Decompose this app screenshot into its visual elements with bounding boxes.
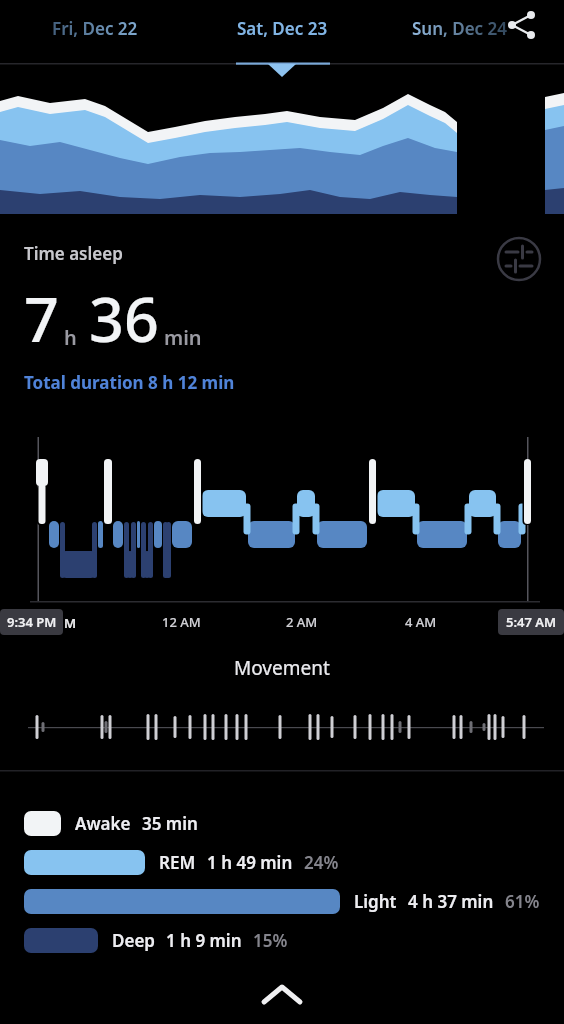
staticText: 4 h 37 min — [408, 890, 494, 913]
button[interactable]: Sat, Dec 23 — [206, 12, 358, 44]
staticText: Light — [354, 890, 397, 913]
button[interactable] — [256, 976, 308, 1016]
button[interactable]: Sun, Dec 24 — [412, 12, 509, 44]
button[interactable]: 9:34 PM — [0, 609, 63, 635]
staticText: 12 AM — [162, 613, 201, 631]
button[interactable]: Light — [24, 888, 540, 914]
staticText: Sun, Dec 24 — [412, 17, 507, 40]
staticText: Awake — [75, 812, 131, 835]
staticText: 7 — [24, 277, 59, 360]
staticText: 2 AM — [286, 613, 318, 631]
staticText: Sat, Dec 23 — [237, 17, 328, 40]
button[interactable]: 5:47 AM — [498, 609, 564, 635]
staticText: 5:47 AM — [506, 613, 557, 631]
staticText: Time asleep — [24, 242, 123, 265]
staticText: h — [64, 324, 77, 351]
staticText: Fri, Dec 22 — [52, 17, 138, 40]
button[interactable] — [500, 6, 548, 50]
staticText: M — [64, 614, 77, 632]
button[interactable]: Deep — [24, 927, 288, 953]
staticText: Total duration 8 h 12 min — [24, 371, 235, 394]
staticText: 36 — [89, 277, 159, 360]
button[interactable]: REM — [24, 849, 339, 875]
staticText: 1 h 9 min — [166, 929, 242, 952]
staticText: Movement — [234, 655, 330, 681]
staticText: 1 h 49 min — [207, 851, 293, 874]
button[interactable] — [498, 238, 542, 282]
staticText: 35 min — [142, 812, 198, 835]
button[interactable]: Awake — [24, 810, 198, 836]
staticText: REM — [159, 851, 196, 874]
staticText: 9:34 PM — [7, 613, 57, 631]
staticText: min — [164, 324, 202, 351]
staticText: 4 AM — [405, 613, 437, 631]
staticText: 15% — [253, 929, 288, 952]
staticText: Deep — [112, 929, 155, 952]
staticText: 61% — [505, 890, 540, 913]
button[interactable]: Fri, Dec 22 — [20, 12, 170, 44]
staticText: 24% — [304, 851, 339, 874]
